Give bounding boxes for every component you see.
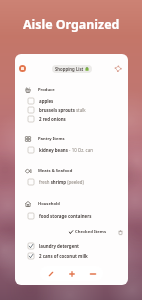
button[interactable]: food storage containers <box>15 211 128 220</box>
button[interactable]: Checked Items <box>15 227 128 237</box>
staticText: Pantry Items <box>38 136 65 142</box>
button[interactable]: Shopping List <box>52 65 92 73</box>
button[interactable]: apples <box>15 96 128 105</box>
button[interactable]: Edit <box>40 266 61 281</box>
button[interactable]: Add item <box>61 266 82 281</box>
staticText: apples <box>39 98 54 104</box>
staticText: brussels sprouts stalk <box>39 107 86 113</box>
staticText: kidney beans - 10 Oz. can <box>39 147 93 153</box>
button[interactable]: fresh shrimp (peeled) <box>15 177 128 186</box>
staticText: fresh shrimp (peeled) <box>39 179 84 185</box>
button[interactable]: More options <box>82 266 103 281</box>
staticText: Produce <box>38 87 55 93</box>
button[interactable]: Meats & Seafood <box>15 166 128 176</box>
button[interactable]: brussels sprouts stalk <box>15 105 128 114</box>
staticText: Household <box>38 201 60 207</box>
staticText: 2 cans of coconut milk <box>39 253 88 259</box>
staticText: Meats & Seafood <box>38 168 73 174</box>
button[interactable]: Pantry Items <box>15 134 128 144</box>
staticText: Aisle Organized <box>23 16 120 33</box>
button[interactable]: Profile <box>19 65 26 72</box>
staticText: Checked Items <box>75 229 107 235</box>
button[interactable]: 2 red onions <box>15 114 128 123</box>
button[interactable]: kidney beans - 10 Oz. can <box>15 145 128 154</box>
button[interactable]: 2 cans of coconut milk <box>15 251 128 260</box>
staticText: 2 red onions <box>39 116 66 122</box>
staticText: food storage containers <box>39 213 92 219</box>
button[interactable]: Delete checked items <box>116 228 125 237</box>
button[interactable]: Household <box>15 199 128 209</box>
button[interactable]: Share <box>113 64 123 74</box>
button[interactable]: laundry detergent <box>15 241 128 250</box>
button[interactable]: Produce <box>15 85 128 95</box>
staticText: laundry detergent <box>39 243 80 249</box>
staticText: Shopping List <box>55 66 84 72</box>
